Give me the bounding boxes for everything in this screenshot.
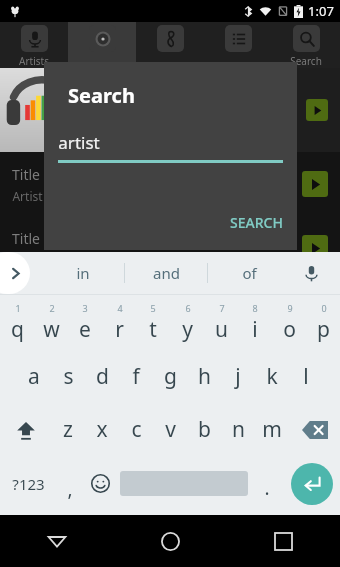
- button[interactable]: ,: [56, 456, 84, 511]
- staticText: Search: [290, 54, 322, 68]
- button[interactable]: in: [42, 252, 124, 294]
- staticText: Title: [12, 229, 40, 248]
- button[interactable]: Shift: [0, 403, 51, 456]
- staticText: j: [235, 362, 241, 391]
- staticText: 2: [49, 302, 55, 314]
- staticText: m: [262, 415, 282, 444]
- button[interactable]: and: [125, 252, 207, 294]
- button[interactable]: z: [51, 403, 85, 456]
- staticText: .: [264, 475, 270, 501]
- button[interactable]: ?123: [0, 456, 56, 511]
- button[interactable]: g: [153, 350, 187, 403]
- button[interactable]: [306, 99, 328, 121]
- staticText: g: [164, 362, 177, 391]
- button[interactable]: c: [119, 403, 153, 456]
- staticText: Artist: [12, 252, 43, 268]
- button[interactable]: Tab: [68, 22, 136, 68]
- staticText: SEARCH: [230, 213, 283, 232]
- staticText: c: [131, 415, 142, 444]
- button[interactable]: Backspace: [289, 403, 340, 456]
- staticText: 7: [219, 302, 225, 314]
- staticText: 8: [252, 302, 258, 314]
- button[interactable]: [302, 171, 328, 197]
- staticText: u: [215, 315, 228, 344]
- staticText: d: [96, 362, 109, 391]
- staticText: Search: [68, 82, 135, 109]
- button[interactable]: 6: [170, 295, 204, 350]
- button[interactable]: Home: [114, 515, 227, 567]
- button[interactable]: 1: [0, 295, 34, 350]
- staticText: artist: [58, 131, 100, 154]
- button[interactable]: j: [221, 350, 255, 403]
- button[interactable]: s: [51, 350, 85, 403]
- button[interactable]: Voice input: [290, 252, 332, 294]
- button[interactable]: Enter: [291, 463, 333, 505]
- button[interactable]: 7: [204, 295, 238, 350]
- staticText: n: [232, 415, 245, 444]
- button[interactable]: 0: [306, 295, 340, 350]
- staticText: 5: [150, 302, 156, 314]
- button[interactable]: of: [208, 252, 290, 294]
- staticText: Artists: [19, 54, 49, 68]
- button[interactable]: 8: [238, 295, 272, 350]
- button[interactable]: Artists: [0, 22, 68, 68]
- staticText: f: [132, 362, 140, 391]
- button[interactable]: Recents: [227, 515, 340, 567]
- staticText: of: [242, 263, 257, 283]
- button[interactable]: SEARCH: [216, 205, 297, 240]
- staticText: p: [317, 315, 330, 344]
- staticText: v: [165, 415, 176, 444]
- staticText: r: [115, 315, 124, 344]
- staticText: x: [96, 415, 108, 444]
- staticText: e: [79, 315, 91, 344]
- staticText: 0: [321, 302, 327, 314]
- button[interactable]: m: [255, 403, 289, 456]
- button[interactable]: Tab: [204, 22, 272, 68]
- button[interactable]: 2: [34, 295, 68, 350]
- staticText: ,: [67, 476, 73, 502]
- button[interactable]: 5: [136, 295, 170, 350]
- staticText: i: [252, 315, 258, 344]
- button[interactable]: Back: [0, 515, 114, 567]
- staticText: y: [182, 315, 193, 344]
- button[interactable]: Emoji: [84, 456, 116, 511]
- staticText: b: [198, 415, 211, 444]
- button[interactable]: d: [85, 350, 119, 403]
- button[interactable]: Search: [272, 22, 340, 68]
- staticText: in: [76, 263, 90, 283]
- staticText: 4: [117, 302, 123, 314]
- staticText: 3: [82, 302, 88, 314]
- button[interactable]: l: [289, 350, 323, 403]
- button[interactable]: v: [153, 403, 187, 456]
- button[interactable]: 3: [68, 295, 102, 350]
- button[interactable]: 9: [272, 295, 306, 350]
- staticText: w: [43, 315, 60, 344]
- button[interactable]: Title: [0, 216, 340, 280]
- button[interactable]: b: [187, 403, 221, 456]
- staticText: 6: [185, 302, 191, 314]
- button[interactable]: [302, 235, 328, 261]
- staticText: k: [266, 362, 278, 391]
- button[interactable]: n: [221, 403, 255, 456]
- button[interactable]: a: [17, 350, 51, 403]
- button[interactable]: More suggestions: [0, 252, 30, 294]
- button[interactable]: x: [85, 403, 119, 456]
- button[interactable]: Space: [116, 456, 251, 511]
- button[interactable]: k: [255, 350, 289, 403]
- staticText: 1: [15, 302, 21, 314]
- button[interactable]: f: [119, 350, 153, 403]
- staticText: s: [63, 362, 74, 391]
- staticText: z: [63, 415, 73, 444]
- staticText: 1:07: [308, 2, 334, 20]
- staticText: t: [149, 315, 157, 344]
- staticText: a: [28, 362, 40, 391]
- staticText: and: [153, 263, 180, 283]
- button[interactable]: Tab: [136, 22, 204, 68]
- button[interactable]: Title: [0, 152, 340, 216]
- button[interactable]: 4: [102, 295, 136, 350]
- staticText: l: [303, 362, 309, 391]
- button[interactable]: .: [251, 456, 283, 511]
- staticText: ?123: [12, 474, 45, 494]
- button[interactable]: h: [187, 350, 221, 403]
- staticText: 9: [287, 302, 293, 314]
